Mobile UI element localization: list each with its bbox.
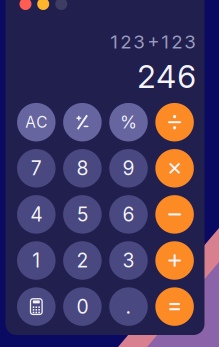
staticText: 6 <box>122 203 134 226</box>
staticText: 123+123 <box>110 30 196 53</box>
staticText: AC <box>25 113 47 131</box>
button[interactable]: 2 <box>63 241 102 280</box>
button[interactable]: 9 <box>109 149 148 188</box>
button[interactable]: All clear <box>17 103 55 141</box>
staticText: % <box>120 112 137 133</box>
button[interactable]: Add <box>155 241 194 280</box>
button[interactable]: Percent <box>109 103 148 141</box>
staticText: 5 <box>77 203 88 226</box>
staticText: 246 <box>137 57 196 95</box>
staticText: 9 <box>122 157 134 180</box>
button[interactable]: Multiply <box>155 149 194 188</box>
staticText: . <box>125 295 131 318</box>
button[interactable]: 3 <box>109 241 148 280</box>
staticText: 3 <box>122 249 134 272</box>
button[interactable]: 0 <box>63 287 102 326</box>
button[interactable]: 4 <box>17 195 55 234</box>
button[interactable]: 5 <box>63 195 102 234</box>
button[interactable]: Subtract <box>155 195 194 234</box>
staticText: 4 <box>30 203 42 226</box>
staticText: 2 <box>76 249 88 272</box>
staticText: 7 <box>31 157 42 180</box>
staticText: 8 <box>76 157 88 180</box>
button[interactable]: Calculator <box>17 287 55 326</box>
button[interactable]: Toggle sign <box>63 103 102 141</box>
button[interactable]: 7 <box>17 149 55 188</box>
button[interactable]: 6 <box>109 195 148 234</box>
staticText: 1 <box>32 249 40 272</box>
button[interactable]: . <box>109 287 148 326</box>
button[interactable]: Divide <box>155 103 194 141</box>
button[interactable]: Equals <box>155 287 194 326</box>
button[interactable]: 1 <box>17 241 55 280</box>
staticText: 0 <box>76 295 88 318</box>
button[interactable]: 8 <box>63 149 102 188</box>
